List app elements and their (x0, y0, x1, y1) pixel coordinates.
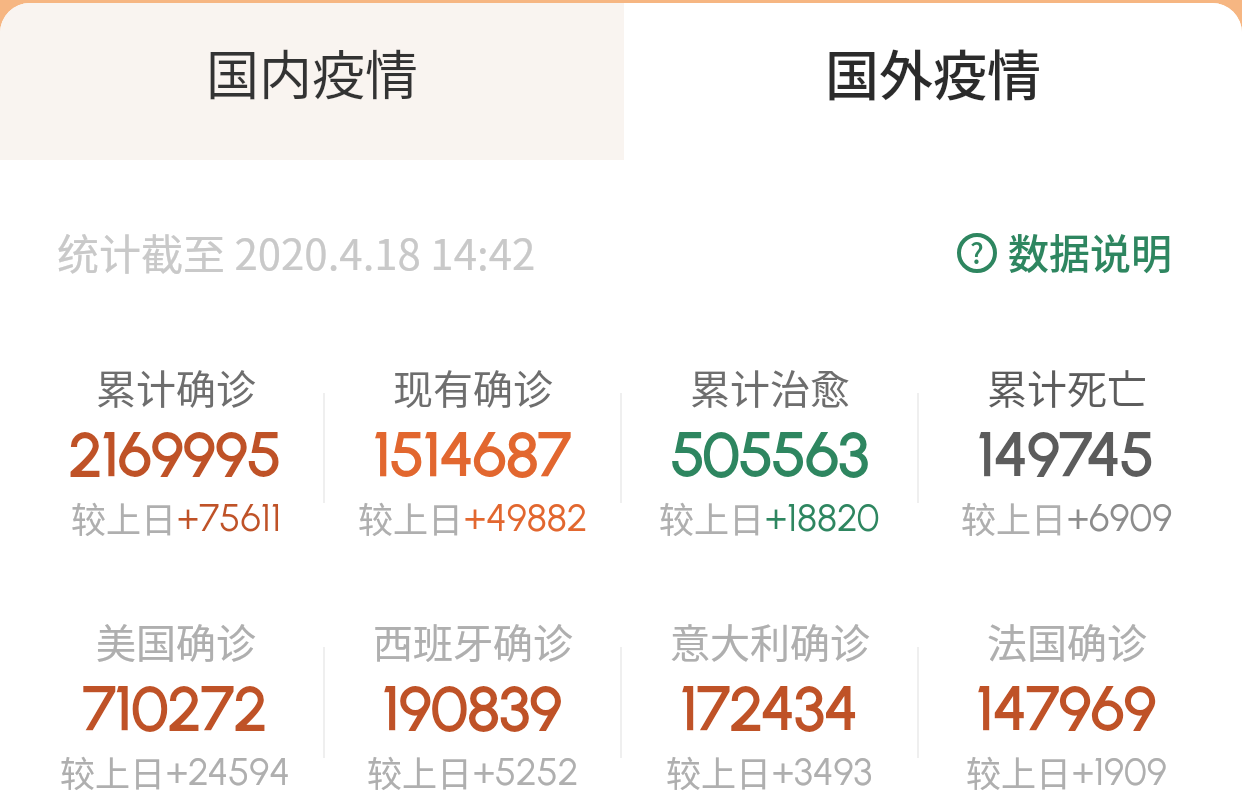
button[interactable]: 美国确诊 (28, 612, 323, 794)
staticText: +49882 (464, 495, 588, 541)
button[interactable]: 意大利确诊 (622, 612, 917, 794)
staticText: 147969 (977, 671, 1157, 744)
staticText: 较上日 (358, 492, 464, 543)
button[interactable]: 现有确诊 (325, 358, 620, 540)
staticText: 较上日 (961, 492, 1067, 543)
staticText: 190839 (383, 671, 562, 744)
staticText: 较上日 (367, 746, 473, 797)
button[interactable]: 累计确诊 (28, 358, 323, 540)
staticText: +1909 (1072, 749, 1167, 795)
staticText: +18820 (765, 495, 880, 541)
staticText: 累计死亡 (987, 358, 1147, 416)
staticText: ? (970, 232, 984, 272)
staticText: 统计截至 2020.4.18 14:42 (57, 221, 536, 282)
staticText: 法国确诊 (987, 612, 1147, 670)
staticText: 较上日 (71, 492, 177, 543)
button[interactable]: 数据说明 (957, 223, 1172, 282)
button[interactable]: 法国确诊 (919, 612, 1214, 794)
staticText: 累计确诊 (96, 358, 256, 416)
staticText: 505563 (671, 417, 869, 490)
staticText: 149745 (978, 417, 1155, 490)
staticText: 国内疫情 (206, 34, 418, 111)
staticText: 172434 (681, 671, 858, 744)
staticText: 国外疫情 (825, 33, 1041, 111)
staticText: 2169995 (69, 417, 282, 490)
button[interactable]: 西班牙确诊 (325, 612, 620, 794)
staticText: +75611 (177, 495, 281, 541)
staticText: 1514687 (374, 417, 571, 490)
staticText: 美国确诊 (96, 612, 256, 670)
staticText: +24594 (166, 749, 291, 795)
staticText: 较上日 (666, 746, 772, 797)
button[interactable]: 累计死亡 (919, 358, 1214, 540)
staticText: 710272 (83, 671, 268, 744)
staticText: 现有确诊 (393, 358, 553, 416)
button[interactable]: 国外疫情 (624, 3, 1242, 160)
staticText: +5252 (473, 749, 579, 795)
staticText: 较上日 (966, 746, 1072, 797)
staticText: 西班牙确诊 (373, 612, 573, 670)
button[interactable]: 累计治愈 (622, 358, 917, 540)
staticText: 意大利确诊 (670, 612, 870, 670)
staticText: +6909 (1067, 495, 1173, 541)
staticText: 数据说明 (1008, 221, 1172, 280)
staticText: 较上日 (659, 492, 765, 543)
staticText: 较上日 (60, 746, 166, 797)
button[interactable]: 国内疫情 (0, 3, 624, 160)
staticText: 累计治愈 (690, 358, 850, 416)
staticText: +3493 (772, 749, 873, 795)
